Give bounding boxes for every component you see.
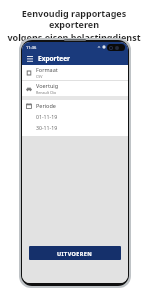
button[interactable]: UITVOEREN: [29, 246, 121, 260]
button[interactable]: Menu: [25, 54, 34, 63]
staticText: volgens eisen belastingdienst: [7, 31, 141, 43]
staticText: 11:36: [26, 45, 37, 50]
staticText: 30-11-19: [36, 124, 58, 131]
staticText: UITVOEREN: [57, 250, 93, 257]
button[interactable]: 30-11-19: [22, 122, 128, 133]
staticText: Voertuig: [36, 82, 59, 89]
button[interactable]: 01-11-19: [22, 111, 128, 122]
staticText: Exporteer: [38, 54, 70, 63]
staticText: Eenvoudig rapportages exporteren: [6, 7, 142, 30]
staticText: Formaat: [36, 66, 58, 73]
staticText: Periode: [36, 102, 56, 109]
button[interactable]: Periode: [22, 100, 128, 111]
button[interactable]: Formaat: [22, 65, 128, 80]
staticText: 01-11-19: [36, 113, 58, 120]
staticText: CSV: [36, 74, 43, 79]
staticText: Renault Clio: [36, 90, 57, 95]
button[interactable]: Voertuig: [22, 81, 128, 96]
